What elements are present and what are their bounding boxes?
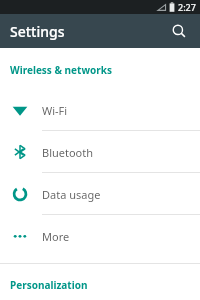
- button[interactable]: More: [0, 215, 200, 257]
- staticText: Settings: [10, 22, 65, 41]
- button[interactable]: Wi-Fi: [0, 89, 200, 131]
- staticText: Bluetooth: [42, 145, 94, 160]
- staticText: Data usage: [42, 187, 101, 202]
- staticText: Wireless & networks: [10, 63, 112, 77]
- button[interactable]: Data usage: [0, 173, 200, 215]
- button[interactable]: Search: [166, 18, 192, 44]
- button[interactable]: Bluetooth: [0, 131, 200, 173]
- staticText: More: [42, 229, 70, 244]
- staticText: Wi-Fi: [42, 103, 68, 118]
- staticText: Personalization: [10, 278, 88, 290]
- staticText: 2:27: [178, 1, 196, 13]
